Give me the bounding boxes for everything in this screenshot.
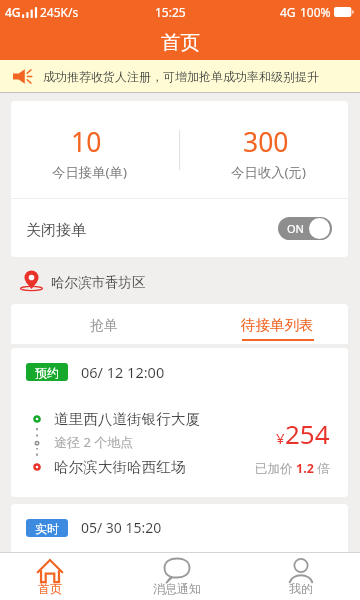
staticText: 06/ 12 12:00 [81, 362, 165, 382]
staticText: 哈尔滨大街哈西红场 [54, 458, 186, 476]
button[interactable]: 关闭接单 [11, 199, 348, 257]
staticText: 4G [280, 4, 296, 20]
staticText: 途径 2 个地点 [54, 433, 134, 451]
staticText: 1.2 [296, 460, 314, 477]
staticText: 预约 [35, 365, 59, 380]
staticText: 我的 [289, 581, 313, 596]
staticText: 254 [285, 416, 330, 451]
button[interactable]: Toggle accepting orders [278, 217, 332, 240]
staticText: 300 [243, 124, 289, 160]
staticText: ON [287, 221, 304, 236]
button[interactable]: 哈尔滨市香坊区 [24, 257, 360, 304]
staticText: 100% [300, 4, 331, 20]
staticText: 10 [71, 124, 102, 160]
button[interactable]: 首页 [0, 552, 100, 600]
staticText: 成功推荐收货人注册，可增加抢单成功率和级别提升 [43, 69, 319, 84]
staticText: 关闭接单 [26, 221, 86, 240]
staticText: 05/ 30 15:20 [81, 518, 162, 537]
staticText: 倍 [314, 460, 330, 477]
staticText: 首页 [38, 581, 62, 596]
button[interactable]: 消息通知 [100, 552, 254, 600]
staticText: 消息通知 [153, 581, 201, 596]
staticText: 15:25 [155, 4, 186, 20]
staticText: 实时 [35, 521, 59, 536]
staticText: ¥ [276, 428, 285, 448]
staticText: 哈尔滨市香坊区 [51, 274, 146, 291]
staticText: 待接单列表 [241, 316, 314, 334]
staticText: 抢单 [90, 317, 118, 335]
button[interactable]: 实时 [11, 504, 348, 600]
staticText: 道里西八道街银行大厦 [54, 410, 200, 428]
staticText: 4G [5, 4, 21, 20]
staticText: 首页 [161, 30, 200, 55]
button[interactable]: 预约 [11, 348, 348, 497]
button[interactable]: 我的 [248, 552, 354, 600]
staticText: 已加价 [255, 460, 296, 477]
button[interactable]: 待接单列表 [197, 304, 348, 345]
button[interactable]: 抢单 [11, 304, 197, 345]
staticText: 245K/s [40, 4, 79, 20]
staticText: 今日接单(单) [52, 163, 127, 181]
staticText: 今日收入(元) [231, 163, 306, 181]
